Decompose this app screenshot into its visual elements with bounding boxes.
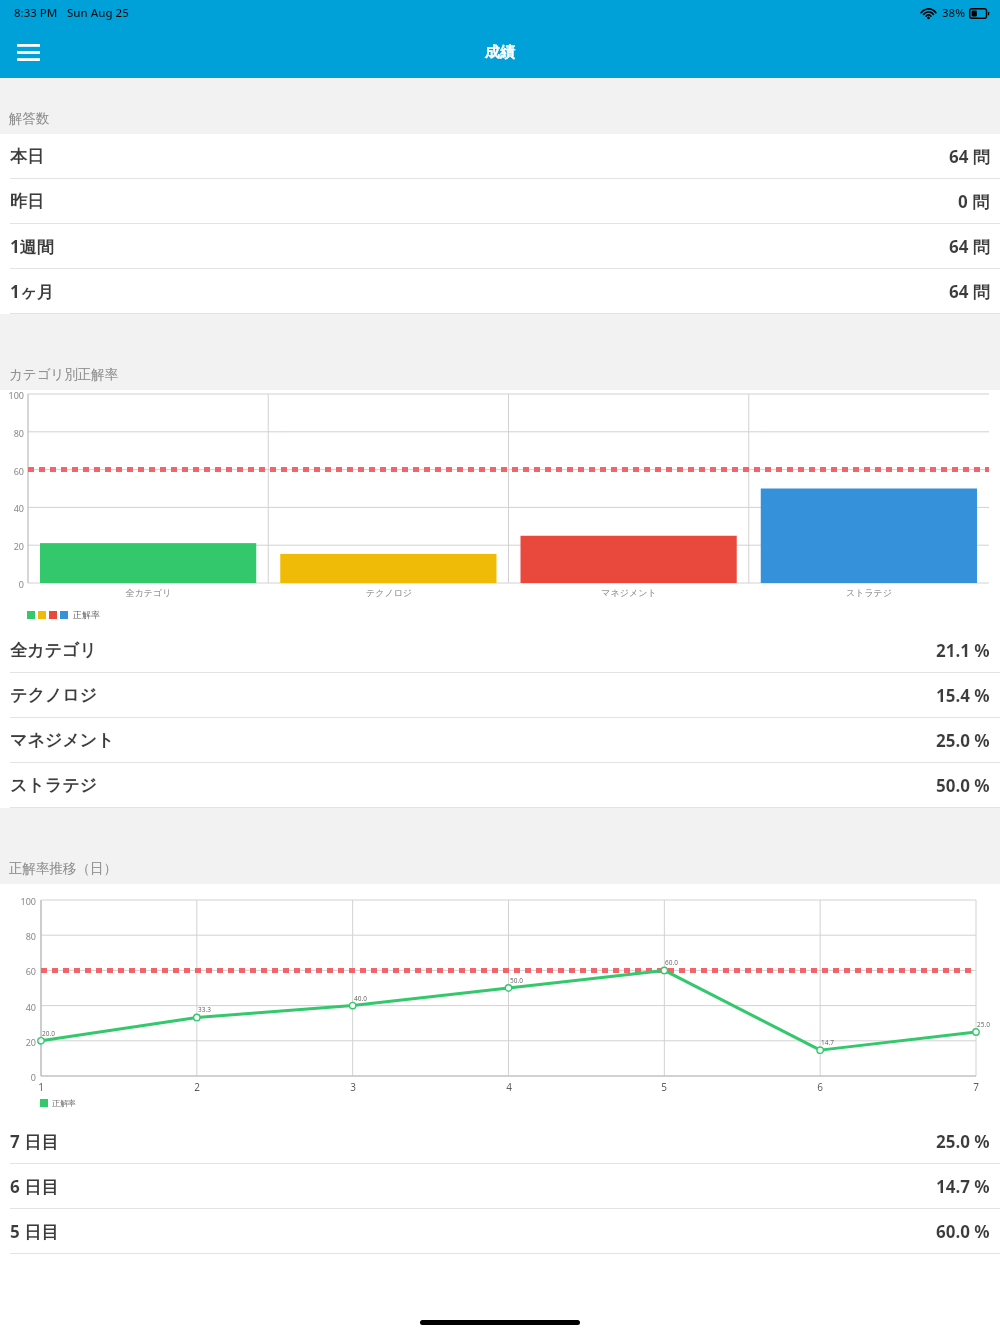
staticText: 64 問 <box>949 280 990 303</box>
staticText: 1週間 <box>10 235 54 258</box>
staticText: 正解率 <box>52 1098 76 1108</box>
staticText: テクノロジ <box>269 587 509 598</box>
staticText: 25.0 <box>977 1020 990 1029</box>
staticText: 60 <box>0 465 24 477</box>
staticText: 1 <box>33 1080 49 1094</box>
button[interactable]: マネジメント <box>0 718 1000 762</box>
staticText: 5 <box>656 1080 672 1094</box>
staticText: 50.0 % <box>936 774 990 797</box>
staticText: 7 <box>968 1080 984 1094</box>
staticText: 20.0 <box>42 1029 55 1038</box>
button[interactable]: 6 日目 <box>0 1164 1000 1208</box>
staticText: 解答数 <box>9 110 50 127</box>
staticText: 80 <box>0 930 36 942</box>
staticText: 0 <box>0 578 24 590</box>
staticText: 64 問 <box>949 145 990 168</box>
staticText: 25.0 % <box>936 1130 990 1153</box>
staticText: 25.0 % <box>936 729 990 752</box>
staticText: 昨日 <box>10 191 44 212</box>
button[interactable]: Menu <box>6 30 50 74</box>
staticText: 40 <box>0 502 24 514</box>
staticText: 1ヶ月 <box>10 280 55 303</box>
button[interactable]: 1週間 <box>0 224 1000 268</box>
staticText: 全カテゴリ <box>28 587 269 598</box>
staticText: テクノロジ <box>10 685 97 706</box>
staticText: 40.0 <box>354 994 367 1003</box>
staticText: 14.7 % <box>936 1175 990 1198</box>
staticText: 20 <box>0 1036 36 1048</box>
staticText: 全カテゴリ <box>10 640 97 661</box>
staticText: カテゴリ別正解率 <box>9 366 119 383</box>
staticText: 80 <box>0 427 24 439</box>
button[interactable]: 7 日目 <box>0 1119 1000 1163</box>
staticText: 14.7 <box>821 1038 834 1047</box>
staticText: 38% <box>942 5 965 21</box>
staticText: 0 <box>0 1071 36 1083</box>
staticText: ストラテジ <box>749 587 989 598</box>
button[interactable]: ストラテジ <box>0 763 1000 807</box>
button[interactable]: 1ヶ月 <box>0 269 1000 313</box>
staticText: 33.3 <box>198 1005 211 1014</box>
staticText: Sun Aug 25 <box>67 5 129 21</box>
staticText: 0 問 <box>958 190 990 213</box>
staticText: 60.0 <box>665 958 678 967</box>
staticText: ストラテジ <box>10 775 97 796</box>
staticText: 40 <box>0 1001 36 1013</box>
staticText: 3 <box>345 1080 361 1094</box>
staticText: 6 <box>812 1080 828 1094</box>
button[interactable]: 5 日目 <box>0 1209 1000 1253</box>
staticText: 8:33 PM <box>14 5 58 21</box>
staticText: 50.0 <box>510 976 523 985</box>
staticText: 本日 <box>10 146 44 167</box>
staticText: 正解率 <box>73 609 100 620</box>
button[interactable]: テクノロジ <box>0 673 1000 717</box>
staticText: 正解率推移（日） <box>9 860 117 877</box>
staticText: 100 <box>0 895 36 907</box>
staticText: 64 問 <box>949 235 990 258</box>
button[interactable]: 全カテゴリ <box>0 628 1000 672</box>
staticText: 21.1 % <box>936 639 990 662</box>
staticText: 5 日目 <box>10 1220 59 1243</box>
staticText: 60 <box>0 965 36 977</box>
staticText: マネジメント <box>509 587 749 598</box>
staticText: 6 日目 <box>10 1175 59 1198</box>
staticText: 100 <box>0 389 24 401</box>
staticText: 60.0 % <box>936 1220 990 1243</box>
staticText: 15.4 % <box>936 684 990 707</box>
staticText: 20 <box>0 540 24 552</box>
staticText: 7 日目 <box>10 1130 59 1153</box>
button[interactable]: 本日 <box>0 134 1000 178</box>
staticText: マネジメント <box>10 730 115 751</box>
staticText: 成績 <box>485 43 515 62</box>
staticText: 4 <box>501 1080 517 1094</box>
staticText: 2 <box>189 1080 205 1094</box>
button[interactable]: 昨日 <box>0 179 1000 223</box>
